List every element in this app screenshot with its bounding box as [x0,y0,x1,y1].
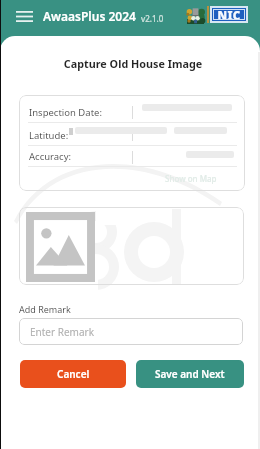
staticText: Accuracy: [29,150,72,163]
button[interactable]: Open navigation menu [11,6,37,27]
staticText: Inspection Date: [29,106,102,119]
button[interactable]: Save and Next [136,360,244,388]
staticText: Add Remark [19,303,71,315]
staticText: Cancel [57,367,90,381]
staticText: v2.1.0 [141,13,164,24]
staticText: AwaasPlus 2024 [43,8,136,24]
staticText: Enter Remark [30,325,95,339]
button[interactable]: Enter Remark [19,318,243,345]
staticText: Capture Old House Image [3,56,260,71]
button[interactable]: House image [19,207,244,285]
staticText: NIC [213,8,245,19]
staticText: Show on Map [165,173,217,184]
staticText: Save and Next [155,367,225,381]
button[interactable]: Cancel [20,360,126,388]
staticText: Latitude: [29,129,69,142]
